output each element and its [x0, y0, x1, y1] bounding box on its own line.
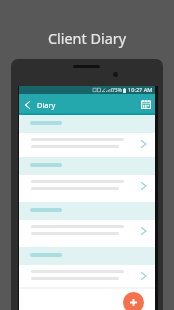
button[interactable]: Calendar [138, 97, 153, 112]
staticText: Client Diary [0, 29, 174, 49]
button[interactable]: Back [19, 96, 36, 113]
button[interactable] [19, 202, 155, 247]
button[interactable]: Add [123, 292, 144, 310]
button[interactable] [19, 247, 155, 287]
button[interactable] [19, 115, 155, 157]
staticText: 10:27 AM [128, 86, 153, 94]
button[interactable] [19, 157, 155, 202]
staticText: 73% [112, 87, 122, 94]
staticText: Diary [37, 100, 56, 110]
